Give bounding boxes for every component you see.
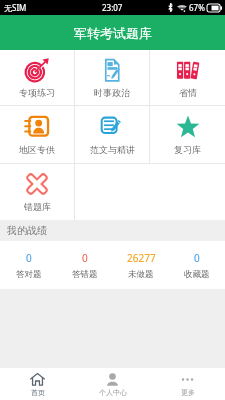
button[interactable]: 首页 xyxy=(0,368,75,400)
button[interactable]: 0 xyxy=(57,241,113,289)
staticText: 收藏题 xyxy=(184,269,210,280)
staticText: 复习库 xyxy=(174,144,201,155)
button[interactable]: 省情 xyxy=(150,50,225,105)
staticText: 67% xyxy=(189,2,205,13)
button[interactable]: 范文与精讲 xyxy=(75,106,149,163)
button[interactable]: 复习库 xyxy=(150,106,225,163)
staticText: 23:07 xyxy=(102,2,123,13)
staticText: 0 xyxy=(194,251,200,265)
button[interactable]: 更多 xyxy=(150,368,225,400)
staticText: 答错题 xyxy=(72,269,98,280)
staticText: 个人中心 xyxy=(99,388,127,397)
button[interactable]: 26277 xyxy=(113,241,169,289)
staticText: 军转考试题库 xyxy=(74,25,152,41)
staticText: 0 xyxy=(82,251,88,265)
staticText: 更多 xyxy=(181,388,195,397)
staticText: 未做题 xyxy=(128,269,154,280)
button[interactable]: 时事政治 xyxy=(75,50,149,105)
staticText: 首页 xyxy=(31,388,45,397)
staticText: 0 xyxy=(26,251,32,265)
staticText: 范文与精讲 xyxy=(90,144,135,155)
staticText: 省情 xyxy=(179,87,197,98)
button[interactable]: 专项练习 xyxy=(0,50,74,105)
staticText: 我的战绩 xyxy=(7,224,47,237)
button[interactable]: 0 xyxy=(169,241,225,289)
button[interactable]: 个人中心 xyxy=(75,368,150,400)
staticText: 答对题 xyxy=(16,269,42,280)
button[interactable]: 0 xyxy=(0,241,57,289)
staticText: 26277 xyxy=(127,251,156,265)
staticText: 专项练习 xyxy=(19,87,55,98)
staticText: 无SIM xyxy=(4,2,27,13)
button[interactable]: 地区专供 xyxy=(0,106,74,163)
staticText: 时事政治 xyxy=(94,87,130,98)
staticText: 错题库 xyxy=(24,201,51,212)
button[interactable]: 错题库 xyxy=(0,164,74,220)
staticText: 地区专供 xyxy=(19,144,55,155)
